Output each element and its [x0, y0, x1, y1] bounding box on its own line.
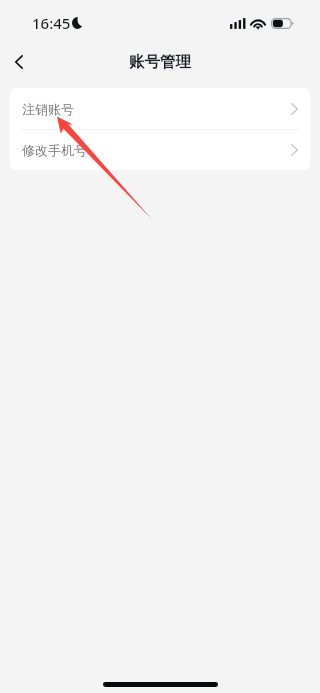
button[interactable]: 注销账号 — [10, 88, 310, 129]
button[interactable]: 修改手机号 — [10, 130, 310, 170]
staticText: 注销账号 — [22, 101, 74, 117]
button[interactable]: Back — [4, 44, 34, 80]
staticText: 账号管理 — [129, 52, 191, 72]
staticText: 16:45 — [32, 13, 71, 33]
staticText: 修改手机号 — [22, 142, 87, 158]
